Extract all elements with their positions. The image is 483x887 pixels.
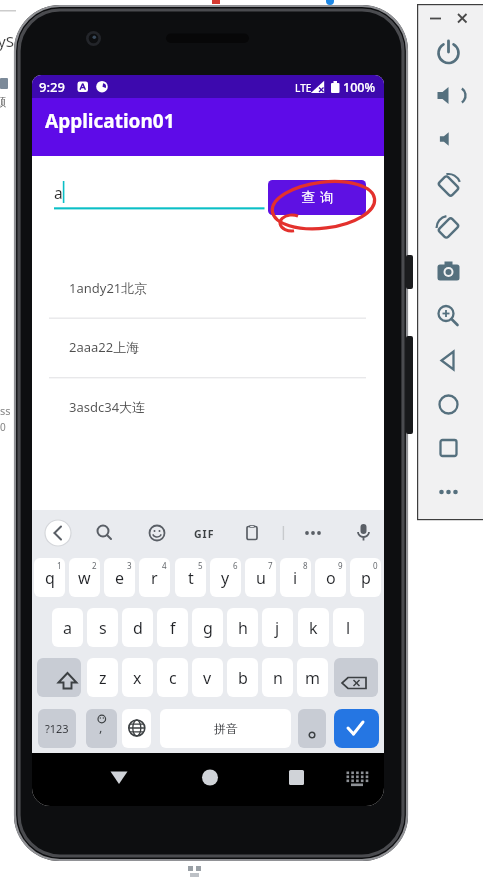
button[interactable]: j bbox=[262, 608, 293, 647]
button[interactable]: e bbox=[104, 558, 135, 597]
staticText: n bbox=[273, 667, 283, 689]
staticText: 3asdc34大连 bbox=[69, 398, 146, 416]
staticText: 7 bbox=[268, 560, 273, 571]
staticText: v bbox=[203, 667, 212, 689]
button[interactable]: b bbox=[227, 658, 258, 697]
staticText: q bbox=[45, 567, 55, 589]
button[interactable]: 查询 bbox=[268, 180, 366, 215]
staticText: o bbox=[326, 567, 336, 589]
button[interactable]: k bbox=[298, 608, 329, 647]
staticText: ?123 bbox=[45, 721, 69, 736]
button[interactable]: p bbox=[350, 558, 381, 597]
staticText: l bbox=[346, 617, 351, 639]
button[interactable]: h bbox=[227, 608, 258, 647]
button[interactable]: c bbox=[157, 658, 188, 697]
button[interactable]: 拼音 bbox=[160, 709, 291, 748]
button[interactable]: v bbox=[192, 658, 223, 697]
button[interactable] bbox=[298, 709, 326, 748]
staticText: p bbox=[361, 567, 371, 589]
staticText: 拼音 bbox=[214, 721, 238, 736]
staticText: 5 bbox=[198, 560, 203, 571]
button[interactable]: t bbox=[175, 558, 206, 597]
button[interactable] bbox=[334, 709, 379, 748]
staticText: 3 bbox=[127, 560, 132, 571]
button[interactable]: y bbox=[210, 558, 241, 597]
button[interactable]: l bbox=[333, 608, 364, 647]
staticText: 1 bbox=[57, 560, 62, 571]
button[interactable]: z bbox=[87, 658, 118, 697]
button[interactable]: g bbox=[192, 608, 223, 647]
staticText: f bbox=[170, 617, 176, 639]
button[interactable] bbox=[86, 709, 117, 748]
button[interactable]: w bbox=[69, 558, 100, 597]
button[interactable]: f bbox=[157, 608, 188, 647]
staticText: t bbox=[188, 567, 194, 589]
staticText: 8 bbox=[303, 560, 308, 571]
button[interactable] bbox=[334, 658, 378, 697]
staticText: ss bbox=[0, 403, 11, 418]
staticText: b bbox=[238, 667, 248, 689]
staticText: e bbox=[115, 567, 125, 589]
staticText: m bbox=[305, 667, 320, 689]
button[interactable]: m bbox=[297, 658, 328, 697]
button[interactable]: d bbox=[122, 608, 153, 647]
staticText: 100% bbox=[343, 79, 376, 96]
staticText: y bbox=[221, 567, 230, 589]
staticText: 2aaa22上海 bbox=[69, 338, 140, 356]
staticText: 6 bbox=[233, 560, 238, 571]
staticText: h bbox=[238, 617, 248, 639]
staticText: 颐 bbox=[0, 94, 6, 109]
button[interactable]: s bbox=[87, 608, 118, 647]
staticText: w bbox=[78, 567, 91, 589]
staticText: 9:29 bbox=[39, 78, 65, 96]
staticText: j bbox=[275, 617, 280, 639]
button[interactable]: i bbox=[280, 558, 311, 597]
staticText: 4 bbox=[162, 560, 167, 571]
staticText: z bbox=[99, 667, 107, 689]
staticText: GIF bbox=[194, 527, 215, 541]
button[interactable]: r bbox=[139, 558, 170, 597]
staticText: 0 bbox=[373, 560, 378, 571]
staticText: u bbox=[256, 567, 266, 589]
staticText: 查询 bbox=[299, 189, 336, 206]
staticText: r bbox=[151, 567, 158, 589]
button[interactable] bbox=[122, 709, 151, 748]
staticText: g bbox=[203, 617, 213, 639]
staticText: yS bbox=[0, 31, 14, 51]
staticText: i bbox=[293, 567, 298, 589]
staticText: 1andy21北京 bbox=[69, 279, 148, 297]
staticText: 2 bbox=[92, 560, 97, 571]
staticText: k bbox=[309, 617, 318, 639]
button[interactable]: ?123 bbox=[38, 709, 76, 748]
staticText: a bbox=[54, 182, 63, 203]
staticText: 9 bbox=[338, 560, 343, 571]
button[interactable]: u bbox=[245, 558, 276, 597]
staticText: Application01 bbox=[45, 108, 175, 134]
staticText: d bbox=[133, 617, 143, 639]
staticText: , bbox=[99, 718, 103, 736]
button[interactable]: n bbox=[262, 658, 293, 697]
staticText: a bbox=[63, 617, 72, 639]
staticText: LTE bbox=[295, 81, 312, 95]
button[interactable]: x bbox=[122, 658, 153, 697]
button[interactable]: a bbox=[52, 608, 83, 647]
button[interactable]: q bbox=[34, 558, 65, 597]
staticText: 0 bbox=[0, 420, 6, 434]
button[interactable] bbox=[37, 658, 81, 697]
staticText: s bbox=[99, 617, 107, 639]
staticText: c bbox=[169, 667, 177, 689]
button[interactable]: o bbox=[315, 558, 346, 597]
staticText: x bbox=[133, 667, 142, 689]
